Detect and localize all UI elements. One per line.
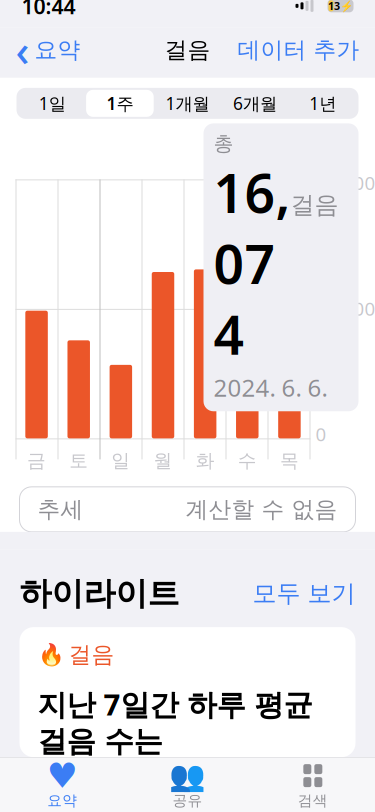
button[interactable]: ♥ xyxy=(0,762,125,811)
staticText: 월 xyxy=(153,449,172,472)
staticText: 모두 보기 xyxy=(252,579,355,608)
staticText: 1주 xyxy=(106,92,133,115)
staticText: 검색 xyxy=(298,792,328,810)
staticText: 금 xyxy=(27,449,46,472)
staticText: 13⚡ xyxy=(328,0,353,13)
staticText: 16,074 xyxy=(213,157,290,369)
staticText: 지난 7일간 하루 평균 걸음 수는 xyxy=(37,685,312,760)
button[interactable]: 🔥 xyxy=(19,627,355,757)
button[interactable]: 데이터 추가 xyxy=(229,32,367,68)
staticText: 계산할 수 없음 xyxy=(185,495,337,523)
button[interactable]: 추세 xyxy=(19,487,355,532)
button[interactable]: 1개월 xyxy=(154,90,221,117)
staticText: 일 xyxy=(111,449,130,472)
staticText: 공유 xyxy=(172,792,202,810)
staticText: 총 xyxy=(213,131,233,156)
staticText: 1일 xyxy=(39,92,66,115)
button[interactable]: 모두 보기 xyxy=(244,575,355,612)
staticText: 0 xyxy=(315,422,326,446)
staticText: 10,000 xyxy=(315,296,375,321)
staticText: ♥ xyxy=(47,756,78,795)
staticText: 1년 xyxy=(309,92,336,115)
staticText: 요약 xyxy=(34,36,80,64)
button[interactable]: 1주 xyxy=(86,90,154,117)
staticText: 걸음 xyxy=(164,36,210,64)
button[interactable]: 검색 xyxy=(250,762,375,811)
staticText: 화 xyxy=(196,449,215,472)
staticText: 수 xyxy=(238,449,257,472)
staticText: 하이라이트 xyxy=(19,574,179,613)
staticText: 데이터 추가 xyxy=(237,36,359,64)
staticText: 토 xyxy=(69,449,88,472)
button[interactable]: 6개월 xyxy=(221,90,289,117)
staticText: 추세 xyxy=(37,495,83,523)
staticText: 10:44 xyxy=(21,0,75,20)
staticText: 20,000 xyxy=(315,170,375,195)
staticText: 요약 xyxy=(47,792,77,810)
button[interactable]: 1일 xyxy=(18,90,86,117)
staticText: ‹ xyxy=(15,21,29,78)
button[interactable]: 👥 xyxy=(125,762,250,811)
button[interactable]: ‹ xyxy=(7,17,88,82)
staticText: 1개월 xyxy=(165,92,209,115)
staticText: 2024. 6. 6. xyxy=(213,371,327,403)
staticText: 👥 xyxy=(169,759,206,792)
staticText: 걸음 xyxy=(290,190,338,220)
staticText: 걸음 xyxy=(68,641,114,668)
staticText: 6개월 xyxy=(233,92,277,115)
staticText: 🔥 xyxy=(37,642,64,667)
button[interactable]: 1년 xyxy=(289,90,356,117)
staticText: 목 xyxy=(280,449,299,472)
